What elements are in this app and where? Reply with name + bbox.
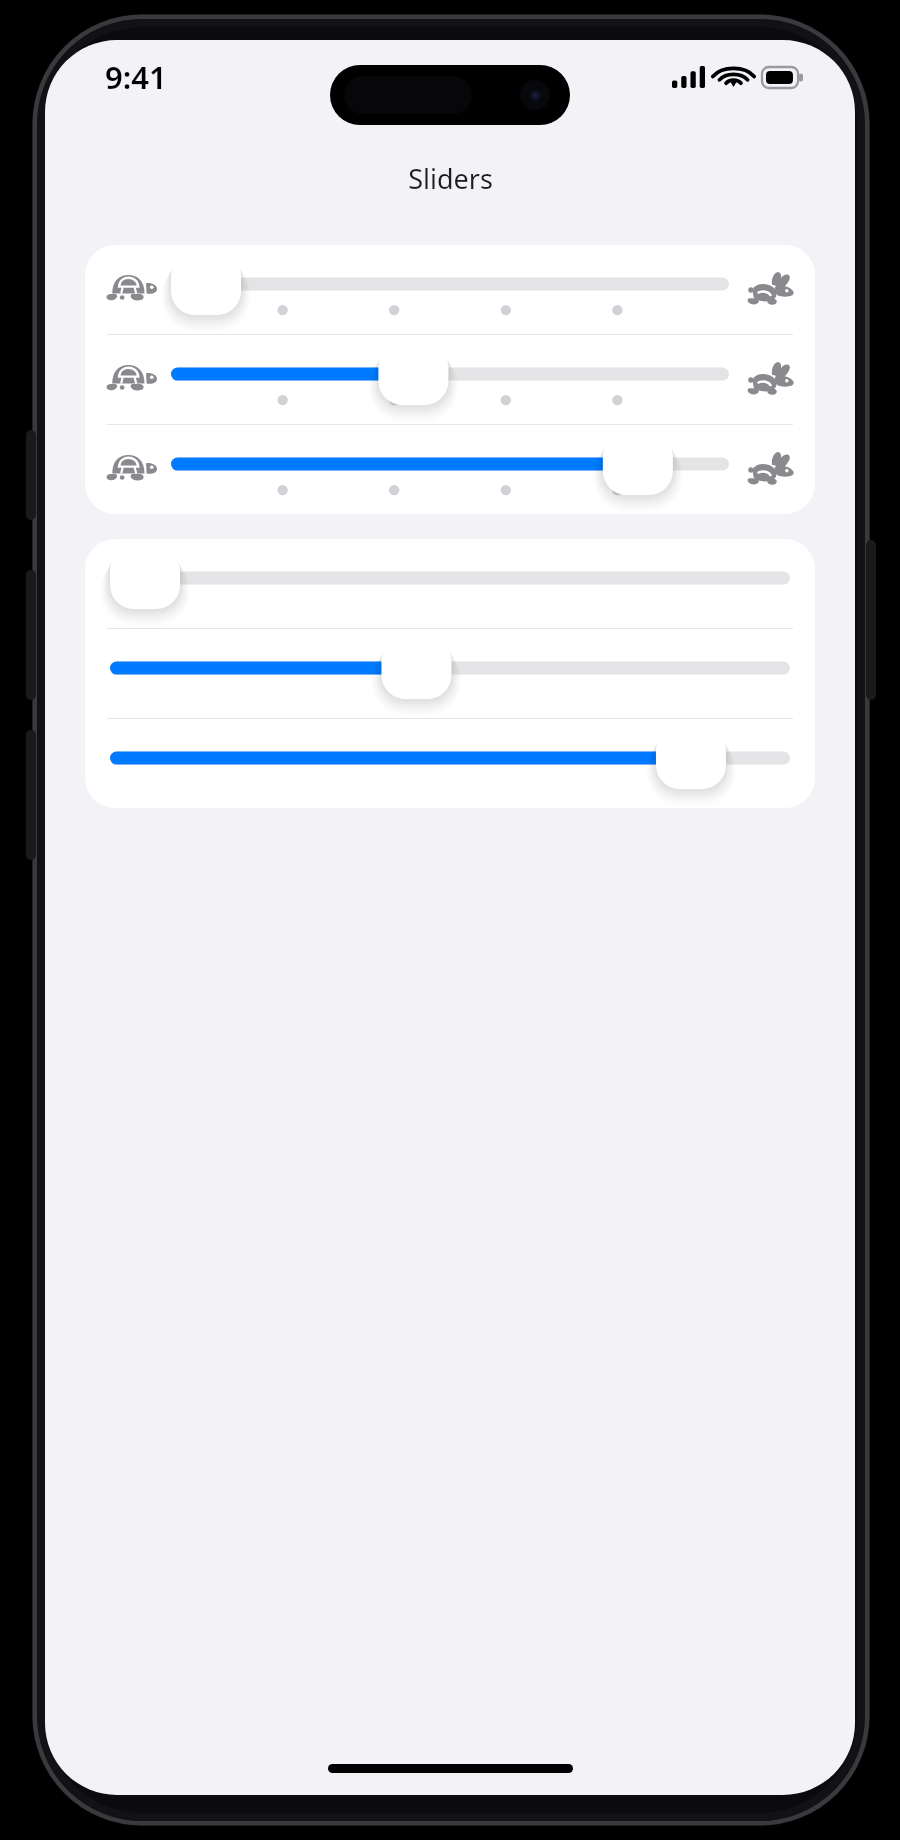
other: Fast [743,358,799,402]
button[interactable]: Slow [85,335,815,424]
button[interactable] [85,539,815,628]
other: Fast [743,448,799,492]
staticText: Sliders [408,160,493,197]
other: Slow [103,448,159,492]
button[interactable] [85,719,815,808]
staticText: 9:41 [105,56,167,98]
other: Slow [103,358,159,402]
button[interactable]: Slow [85,245,815,334]
button[interactable] [85,629,815,718]
button[interactable]: Slow [85,425,815,514]
other: Slow [103,268,159,312]
other: Fast [743,268,799,312]
